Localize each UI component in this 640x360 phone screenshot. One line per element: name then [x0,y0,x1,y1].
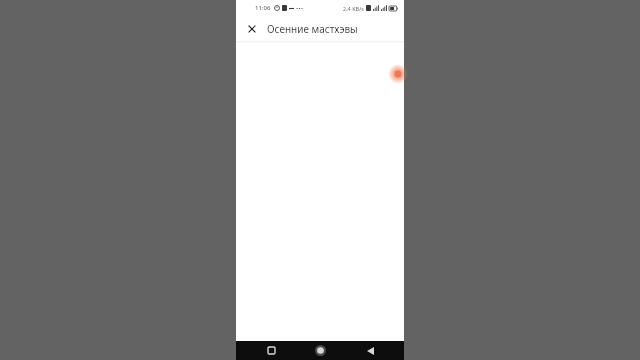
button[interactable]: Back [355,341,385,360]
staticText: 11:06 [255,4,271,12]
button[interactable]: Recents [256,341,286,360]
staticText: 2,4 KB/s [343,5,364,12]
button[interactable]: Home [305,341,335,360]
button[interactable]: Close [243,20,261,38]
button[interactable]: Reaction [388,64,408,84]
staticText: Осенние мастхэвы [267,22,358,36]
